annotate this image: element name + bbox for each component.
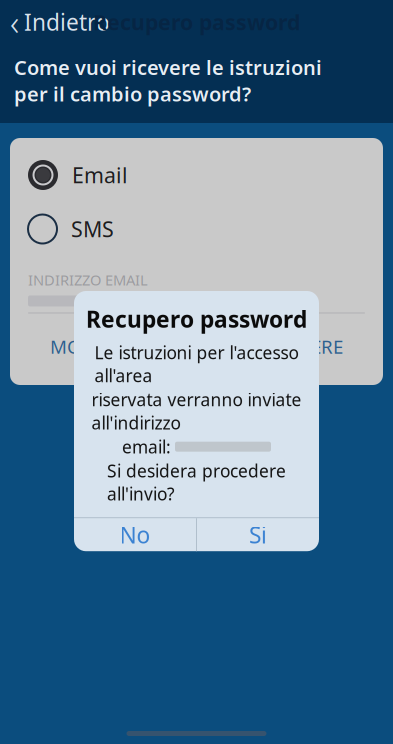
staticText: PROCEDERE bbox=[237, 334, 343, 359]
button[interactable]: Si bbox=[197, 518, 319, 551]
button[interactable]: SMS bbox=[10, 206, 383, 252]
staticText: INDIRIZZO EMAIL bbox=[28, 270, 148, 289]
staticText: riservata verranno inviate all'indirizzo bbox=[91, 388, 301, 434]
staticText: Come vuoi ricevere le istruzioni per il … bbox=[14, 54, 322, 107]
button[interactable]: PROCEDERE bbox=[237, 329, 343, 363]
button[interactable]: Email bbox=[10, 152, 383, 198]
staticText: Recupero password bbox=[93, 8, 300, 36]
staticText: SMS bbox=[71, 215, 114, 243]
button[interactable]: No bbox=[74, 518, 196, 551]
staticText: Le istruzioni per l'accesso all'area bbox=[94, 341, 298, 387]
staticText: Si desidera procedere all'invio? bbox=[107, 459, 286, 505]
staticText: Recupero password bbox=[86, 304, 307, 334]
button[interactable]: ‹ bbox=[0, 4, 120, 40]
button[interactable]: MODIFICA bbox=[50, 329, 142, 363]
staticText: ‹ bbox=[10, 0, 19, 45]
staticText: Si bbox=[249, 520, 267, 550]
staticText: Indietro bbox=[24, 7, 110, 37]
staticText: email: bbox=[122, 435, 171, 458]
staticText: No bbox=[119, 520, 150, 550]
staticText: Email bbox=[72, 161, 128, 189]
staticText: MODIFICA bbox=[50, 334, 142, 359]
